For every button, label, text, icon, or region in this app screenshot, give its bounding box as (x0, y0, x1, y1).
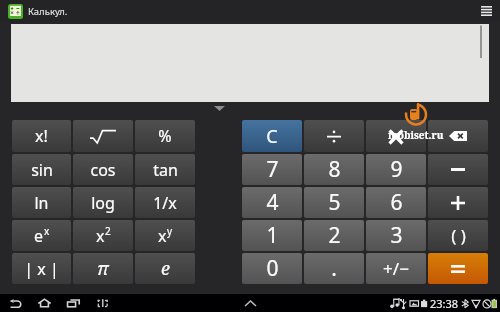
button[interactable]: x (135, 220, 195, 251)
staticText: +/− (383, 257, 409, 280)
staticText: 2 (105, 224, 111, 238)
button[interactable] (73, 120, 133, 152)
staticText: x! (35, 125, 48, 147)
button[interactable]: 3 (366, 220, 426, 251)
staticText: tan (153, 159, 178, 181)
button[interactable]: 2 (304, 220, 364, 251)
staticText: 8 (328, 155, 341, 184)
button[interactable]: ( ) (428, 220, 488, 251)
button[interactable]: % (135, 120, 195, 152)
button[interactable]: cos (73, 154, 133, 185)
button[interactable] (428, 187, 488, 218)
staticText: cos (90, 159, 116, 181)
staticText: 7 (266, 155, 279, 184)
button[interactable]: log (73, 187, 133, 218)
staticText: π (97, 256, 109, 281)
staticText: 9 (390, 155, 403, 184)
button[interactable]: More options (476, 1, 496, 21)
staticText: 0 (266, 254, 279, 283)
staticText: ln (34, 192, 49, 214)
button[interactable]: e (135, 253, 195, 284)
button[interactable]: Backspace (428, 120, 488, 152)
button[interactable] (366, 120, 426, 152)
staticText: x (44, 224, 50, 238)
button[interactable] (304, 120, 364, 152)
staticText: 3 (390, 221, 403, 250)
button[interactable]: 6 (366, 187, 426, 218)
staticText: 4 (266, 188, 279, 217)
button[interactable]: π (73, 253, 133, 284)
button[interactable]: | x | (12, 253, 71, 284)
staticText: % (158, 125, 172, 147)
staticText: 2 (328, 221, 341, 250)
button[interactable]: Back (6, 294, 24, 312)
button[interactable] (428, 154, 488, 185)
button[interactable] (428, 253, 488, 284)
staticText: C (266, 124, 278, 149)
staticText: e (34, 225, 44, 247)
button[interactable]: x (73, 220, 133, 251)
other: Backspace (449, 131, 467, 141)
staticText: 1 (266, 221, 279, 250)
button[interactable]: 1/x (135, 187, 195, 218)
button[interactable]: ln (12, 187, 71, 218)
staticText: ( ) (451, 224, 466, 247)
button[interactable]: 7 (242, 154, 302, 185)
staticText: mobiset.ru (388, 128, 444, 142)
button[interactable]: 4 (242, 187, 302, 218)
staticText: Калькул. (28, 5, 68, 18)
staticText: 23:38 (430, 296, 459, 311)
button[interactable]: 8 (304, 154, 364, 185)
staticText: e (161, 256, 170, 281)
staticText: 1/x (153, 192, 177, 214)
button[interactable]: C (242, 120, 302, 152)
button[interactable]: 1 (242, 220, 302, 251)
button[interactable]: . (304, 253, 364, 284)
button[interactable]: Home (35, 294, 53, 312)
staticText: x (96, 225, 105, 247)
button[interactable]: x! (12, 120, 71, 152)
staticText: x (158, 225, 167, 247)
button[interactable]: e (12, 220, 71, 251)
button[interactable]: Screenshot (93, 294, 111, 312)
button[interactable]: Recent apps (64, 294, 82, 312)
button[interactable]: sin (12, 154, 71, 185)
button[interactable]: tan (135, 154, 195, 185)
button[interactable]: 9 (366, 154, 426, 185)
button[interactable]: 0 (242, 253, 302, 284)
staticText: . (331, 254, 337, 283)
staticText: 5 (328, 188, 341, 217)
staticText: 6 (390, 188, 403, 217)
staticText: log (91, 192, 115, 214)
staticText: | x | (24, 258, 59, 280)
staticText: y (167, 224, 173, 238)
staticText: sin (31, 159, 53, 181)
button[interactable]: +/− (366, 253, 426, 284)
button[interactable]: 5 (304, 187, 364, 218)
